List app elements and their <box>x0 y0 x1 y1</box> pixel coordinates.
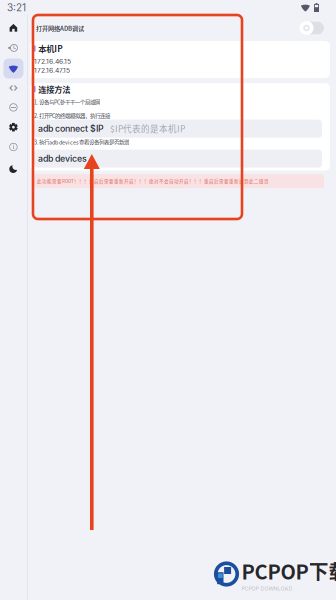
staticText: 连接方法 <box>38 83 70 95</box>
button[interactable]: Shell <box>0 78 27 98</box>
button[interactable]: Dark mode <box>0 159 27 179</box>
staticText: 172.16.46.15 <box>34 57 71 65</box>
staticText: 1.设备与PC处于于一个局域网 <box>34 98 100 106</box>
button[interactable]: Home <box>0 18 27 38</box>
button[interactable]: Disable <box>0 97 27 117</box>
staticText: 本机IP <box>38 42 63 54</box>
staticText: adb connect $IP <box>38 123 104 134</box>
button[interactable]: Toggle network ADB debugging <box>300 21 324 35</box>
staticText: PCPOP DOWNLOAD <box>241 585 292 592</box>
staticText: adb devices <box>38 153 87 164</box>
button[interactable]: Network ADB <box>0 58 27 78</box>
staticText: $IP代表的是本机IP <box>110 122 185 135</box>
staticText: 3.执行adb devices查看设备列表是否新增 <box>34 138 129 146</box>
staticText: 3:21 <box>7 1 26 14</box>
button[interactable]: About <box>0 137 27 157</box>
button[interactable]: Settings <box>0 117 27 137</box>
staticText: 打开网络ADB调试 <box>36 24 84 32</box>
staticText: 2.打开PC的终端模拟器，执行连接 <box>34 112 110 119</box>
staticText: 172.16.47.15 <box>34 66 70 74</box>
staticText: PCPOP下载 <box>241 556 336 585</box>
staticText: 此功能需要ROOT！！！重启后需要重新开启！！！绝对不会自动开启！！！重启后需要… <box>37 178 269 184</box>
button[interactable]: History <box>0 38 27 58</box>
